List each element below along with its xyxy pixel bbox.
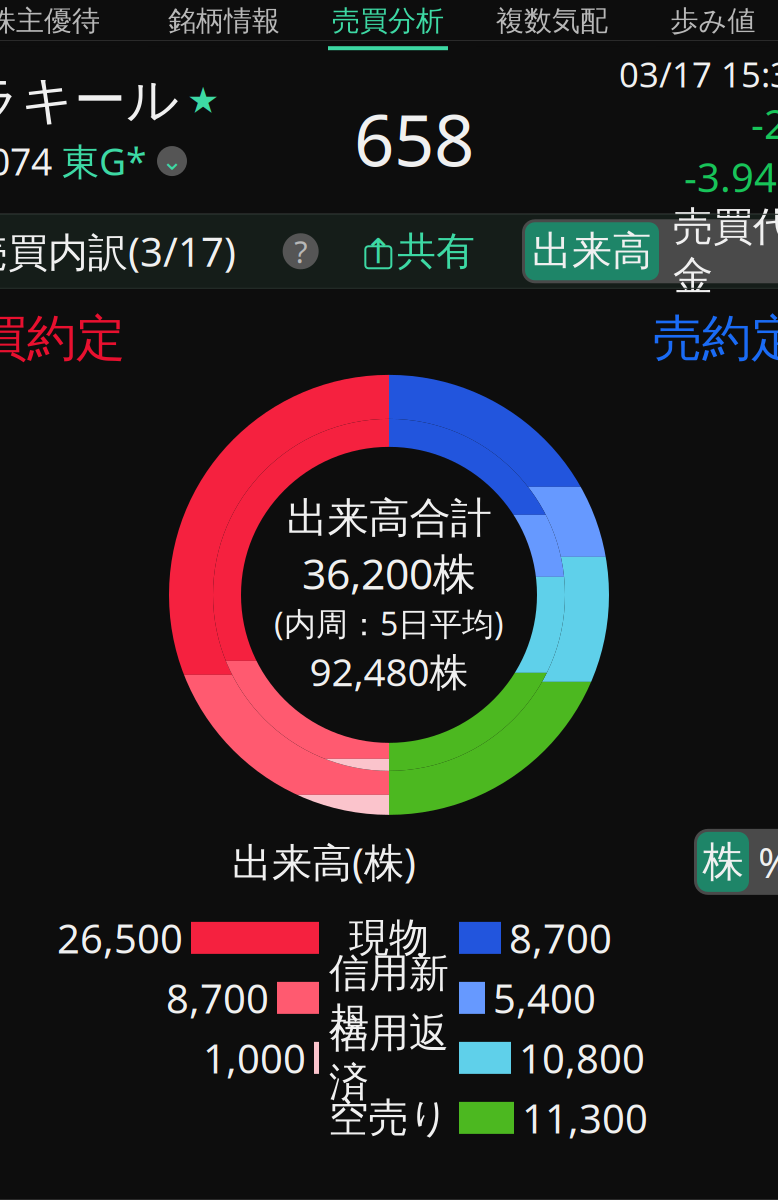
- button[interactable]: 売買代金: [659, 222, 778, 280]
- button[interactable]: お気に入り: [187, 80, 219, 121]
- button[interactable]: 複数気配: [462, 6, 642, 40]
- button[interactable]: 売買分析: [314, 6, 462, 40]
- staticText: 銘柄情報: [168, 4, 280, 38]
- staticText: ?: [294, 231, 307, 272]
- staticText: ラキール: [0, 68, 179, 132]
- staticText: 36,200株: [302, 544, 476, 601]
- staticText: ↑: [364, 232, 393, 271]
- staticText: 11,300: [522, 1091, 648, 1144]
- button[interactable]: 銘柄メニュー: [157, 146, 187, 176]
- staticText: 1,000: [203, 1031, 306, 1084]
- staticText: (内周：5日平均): [274, 602, 504, 645]
- staticText: 共有: [397, 227, 475, 275]
- staticText: 出来高合計: [286, 493, 491, 543]
- staticText: 信用新規: [329, 949, 449, 1047]
- button[interactable]: 出来高: [525, 222, 659, 280]
- staticText: 658: [354, 92, 474, 186]
- staticText: 複数気配: [496, 4, 608, 38]
- staticText: 10,800: [519, 1031, 645, 1084]
- staticText: 売買内訳(3/17): [0, 225, 236, 278]
- staticText: 株: [702, 836, 743, 887]
- staticText: 買約定: [0, 308, 125, 369]
- staticText: 8,700: [166, 971, 269, 1024]
- staticText: 信用返済: [329, 1009, 449, 1107]
- staticText: 売約定: [653, 308, 778, 369]
- staticText: ⌄: [161, 147, 182, 175]
- staticText: 26,500: [57, 911, 183, 964]
- staticText: 売買分析: [332, 4, 444, 38]
- staticText: 売買代金: [673, 202, 778, 300]
- staticText: 出来高(株): [232, 835, 416, 888]
- button[interactable]: %: [749, 832, 778, 892]
- staticText: 現物: [349, 913, 429, 962]
- staticText: -27: [751, 97, 778, 150]
- button[interactable]: 株主優待: [0, 6, 134, 40]
- button[interactable]: 歩み値: [642, 6, 778, 40]
- button[interactable]: ヘルプ: [283, 233, 319, 269]
- staticText: -3.94%: [684, 150, 778, 203]
- staticText: 株主優待: [0, 4, 100, 38]
- staticText: 8,700: [509, 911, 612, 964]
- button[interactable]: ↑: [365, 227, 475, 275]
- staticText: 空売り: [328, 1093, 449, 1142]
- staticText: 東G*: [62, 136, 147, 186]
- staticText: 03/17 15:30: [619, 51, 778, 97]
- staticText: 5,400: [493, 971, 596, 1024]
- button[interactable]: 銘柄情報: [134, 6, 314, 40]
- staticText: 出来高: [532, 227, 652, 276]
- staticText: %: [758, 834, 778, 889]
- staticText: ★: [187, 80, 219, 121]
- staticText: 4074: [0, 136, 52, 186]
- staticText: 92,480株: [309, 646, 468, 697]
- button[interactable]: 株: [697, 832, 749, 892]
- staticText: 歩み値: [670, 4, 755, 38]
